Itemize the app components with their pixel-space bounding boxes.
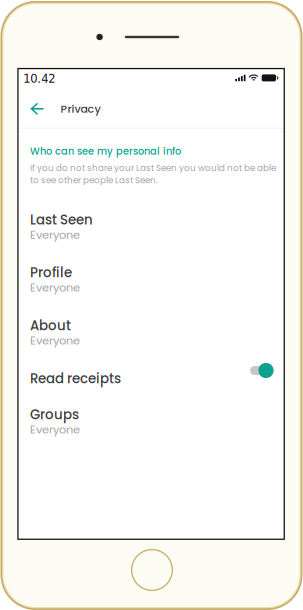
button[interactable]: Profile	[30, 265, 272, 301]
staticText: Who can see my personal info	[30, 145, 181, 158]
staticText: Everyone	[30, 280, 80, 296]
button[interactable]: Back	[31, 102, 57, 116]
staticText: Profile	[30, 263, 72, 282]
staticText: If you do not share your Last Seen you w…	[30, 162, 276, 186]
staticText: Everyone	[30, 422, 80, 438]
staticText: 10.42	[23, 72, 55, 85]
button[interactable]: About	[30, 318, 272, 354]
button[interactable]: Groups	[30, 407, 272, 443]
staticText: Groups	[30, 405, 79, 424]
staticText: Everyone	[30, 333, 80, 349]
staticText: About	[30, 316, 71, 335]
staticText: Privacy	[61, 101, 101, 116]
staticText: Last Seen	[30, 210, 93, 229]
staticText: Everyone	[30, 227, 80, 243]
button[interactable]: Read receipts	[30, 360, 272, 388]
button[interactable]: Last Seen	[30, 212, 272, 248]
staticText: Read receipts	[30, 369, 121, 388]
